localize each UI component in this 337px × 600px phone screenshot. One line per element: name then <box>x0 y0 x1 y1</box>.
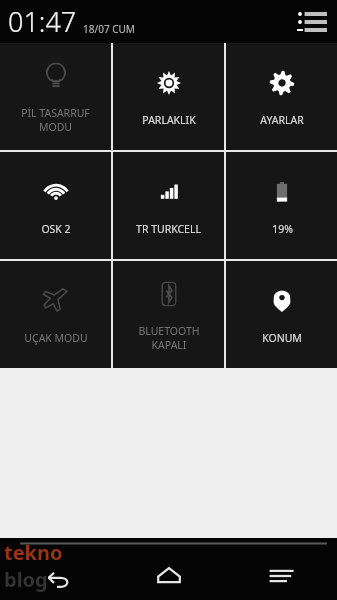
button[interactable]: Recent apps <box>225 552 337 600</box>
button[interactable]: PARLAKLIK <box>113 43 224 150</box>
staticText: blog <box>4 566 48 593</box>
staticText: BLUETOOTH KAPALI <box>138 324 200 352</box>
button[interactable]: KONUM <box>226 261 337 368</box>
button[interactable]: 19% <box>226 152 337 259</box>
button[interactable]: OSK 2 <box>0 152 111 259</box>
staticText: TR TURKCELL <box>136 222 201 236</box>
button[interactable]: TR TURKCELL <box>113 152 224 259</box>
staticText: PİL TASARRUF MODU <box>21 106 90 134</box>
staticText: 19% <box>272 222 293 236</box>
button[interactable]: PİL TASARRUF MODU <box>0 43 111 150</box>
staticText: AYARLAR <box>260 113 304 127</box>
staticText: 18/07 CUM <box>83 22 135 36</box>
button[interactable]: UÇAK MODU <box>0 261 111 368</box>
staticText: UÇAK MODU <box>24 331 88 345</box>
staticText: 01:47 <box>8 3 77 40</box>
staticText: tekno <box>4 539 63 566</box>
button[interactable]: AYARLAR <box>226 43 337 150</box>
staticText: PARLAKLIK <box>142 113 196 127</box>
button[interactable]: Back <box>0 552 113 600</box>
staticText: OSK 2 <box>41 222 71 236</box>
staticText: KONUM <box>262 331 302 345</box>
button[interactable]: Quick settings list <box>295 8 329 36</box>
button[interactable]: BLUETOOTH KAPALI <box>113 261 224 368</box>
button[interactable]: Home <box>113 552 225 600</box>
